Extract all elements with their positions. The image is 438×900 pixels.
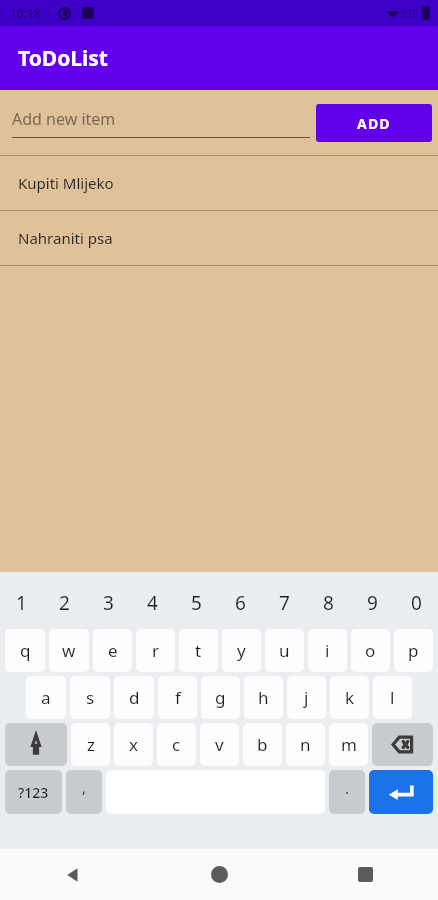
staticText: d xyxy=(129,686,140,709)
button[interactable]: 4 xyxy=(130,578,174,627)
button[interactable]: p xyxy=(394,629,433,672)
button[interactable]: u xyxy=(265,629,304,672)
staticText: p xyxy=(408,639,419,662)
staticText: t xyxy=(195,639,202,662)
staticText: ?123 xyxy=(18,783,49,802)
staticText: 0 xyxy=(411,590,422,616)
button[interactable]: o xyxy=(351,629,390,672)
button[interactable]: , xyxy=(66,770,102,814)
staticText: g xyxy=(215,686,226,709)
button[interactable]: 2 xyxy=(43,578,86,627)
staticText: r xyxy=(152,639,160,662)
staticText: m xyxy=(341,733,357,756)
staticText: 7 xyxy=(279,590,290,616)
staticText: j xyxy=(304,686,309,709)
staticText: Nahraniti psa xyxy=(18,228,113,248)
staticText: Add new item xyxy=(12,108,116,130)
button[interactable]: 6 xyxy=(218,578,262,627)
staticText: . xyxy=(345,778,350,798)
button[interactable]: v xyxy=(200,723,239,766)
button[interactable]: Nahraniti psa xyxy=(0,211,438,265)
staticText: i xyxy=(325,639,330,662)
button[interactable]: Recents xyxy=(292,849,438,900)
button[interactable]: j xyxy=(287,676,326,719)
staticText: x xyxy=(129,733,138,756)
button[interactable]: Back xyxy=(0,849,146,900)
button[interactable]: Kupiti Mlijeko xyxy=(0,156,438,210)
button[interactable]: g xyxy=(201,676,240,719)
button[interactable]: k xyxy=(330,676,369,719)
button[interactable]: 1 xyxy=(0,578,43,627)
staticText: s xyxy=(86,686,95,709)
button[interactable]: t xyxy=(179,629,218,672)
button[interactable]: 0 xyxy=(394,578,438,627)
button[interactable]: a xyxy=(26,676,66,719)
button[interactable]: x xyxy=(114,723,153,766)
staticText: w xyxy=(62,639,76,662)
button[interactable]: i xyxy=(308,629,347,672)
button[interactable]: h xyxy=(244,676,283,719)
staticText: , xyxy=(82,777,87,797)
staticText: 3 xyxy=(103,590,114,616)
staticText: o xyxy=(365,639,376,662)
button[interactable]: w xyxy=(49,629,89,672)
staticText: 1 xyxy=(16,590,27,616)
staticText: f xyxy=(175,686,181,709)
staticText: 2 xyxy=(59,590,70,616)
button[interactable]: Home xyxy=(146,849,292,900)
staticText: c xyxy=(172,733,181,756)
button[interactable]: z xyxy=(71,723,110,766)
staticText: n xyxy=(300,733,311,756)
button[interactable]: c xyxy=(157,723,196,766)
staticText: v xyxy=(215,733,224,756)
staticText: 4 xyxy=(147,590,158,616)
staticText: 5 xyxy=(191,590,202,616)
button[interactable]: n xyxy=(286,723,325,766)
button[interactable]: y xyxy=(222,629,261,672)
button[interactable]: b xyxy=(243,723,282,766)
button[interactable]: q xyxy=(5,629,45,672)
button[interactable]: 5 xyxy=(174,578,218,627)
button[interactable]: 8 xyxy=(306,578,350,627)
staticText: Kupiti Mlijeko xyxy=(18,173,114,193)
button[interactable]: . xyxy=(329,770,365,814)
staticText: l xyxy=(390,686,395,709)
button[interactable]: f xyxy=(158,676,197,719)
button[interactable]: l xyxy=(373,676,412,719)
staticText: ToDoList xyxy=(18,44,108,73)
staticText: k xyxy=(345,686,355,709)
button[interactable]: 3 xyxy=(86,578,130,627)
staticText: y xyxy=(237,639,246,662)
button[interactable]: ?123 xyxy=(5,770,62,814)
button[interactable]: 7 xyxy=(262,578,306,627)
staticText: 10:18 xyxy=(10,5,41,21)
button[interactable]: d xyxy=(114,676,154,719)
staticText: 8 xyxy=(323,590,334,616)
staticText: 9 xyxy=(367,590,378,616)
staticText: e xyxy=(108,639,118,662)
staticText: u xyxy=(279,639,290,662)
staticText: q xyxy=(20,639,31,662)
button[interactable]: s xyxy=(70,676,110,719)
staticText: 6 xyxy=(235,590,246,616)
button[interactable]: e xyxy=(93,629,132,672)
button[interactable]: Add new item xyxy=(12,108,310,138)
staticText: z xyxy=(87,733,95,756)
staticText: h xyxy=(258,686,269,709)
staticText: LTE xyxy=(403,7,418,19)
staticText: a xyxy=(41,686,51,709)
button[interactable]: Backspace xyxy=(372,723,433,766)
staticText: ADD xyxy=(357,114,391,133)
button[interactable]: Shift xyxy=(5,723,67,766)
button[interactable]: Enter xyxy=(369,770,433,814)
staticText: b xyxy=(257,733,268,756)
button[interactable]: 9 xyxy=(350,578,394,627)
button[interactable]: r xyxy=(136,629,175,672)
button[interactable]: ADD xyxy=(316,104,432,142)
button[interactable]: m xyxy=(329,723,368,766)
